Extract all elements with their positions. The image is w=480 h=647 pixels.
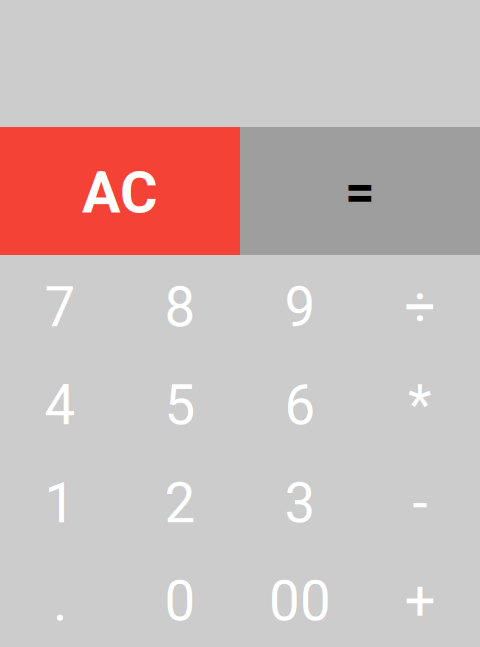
staticText: 8 <box>164 275 195 340</box>
button[interactable]: 5 <box>120 353 240 451</box>
staticText: 3 <box>284 471 315 536</box>
staticText: * <box>408 373 432 438</box>
button[interactable]: Equals <box>240 127 480 255</box>
staticText: 00 <box>269 569 331 634</box>
button[interactable]: Plus <box>360 549 480 647</box>
button[interactable]: 3 <box>240 451 360 549</box>
staticText: 4 <box>44 373 75 438</box>
button[interactable]: 4 <box>0 353 120 451</box>
button[interactable]: 6 <box>240 353 360 451</box>
staticText: 2 <box>164 471 195 536</box>
button[interactable]: 2 <box>120 451 240 549</box>
staticText: - <box>412 471 427 536</box>
staticText: = <box>345 161 375 222</box>
staticText: AC <box>82 159 158 227</box>
button[interactable]: 00 <box>240 549 360 647</box>
staticText: 9 <box>284 275 315 340</box>
button[interactable]: Multiply <box>360 353 480 451</box>
button[interactable]: Divide <box>360 255 480 353</box>
staticText: + <box>404 569 435 634</box>
staticText: 7 <box>44 275 75 340</box>
staticText: 0 <box>164 569 195 634</box>
button[interactable]: 7 <box>0 255 120 353</box>
button[interactable]: 0 <box>120 549 240 647</box>
button[interactable]: 8 <box>120 255 240 353</box>
staticText: 1 <box>44 471 75 536</box>
button[interactable]: Minus <box>360 451 480 549</box>
button[interactable]: 1 <box>0 451 120 549</box>
staticText: 5 <box>164 373 195 438</box>
button[interactable]: 9 <box>240 255 360 353</box>
staticText: . <box>53 569 67 634</box>
button[interactable]: All clear <box>0 127 240 255</box>
staticText: 6 <box>284 373 315 438</box>
staticText: ÷ <box>404 275 435 340</box>
